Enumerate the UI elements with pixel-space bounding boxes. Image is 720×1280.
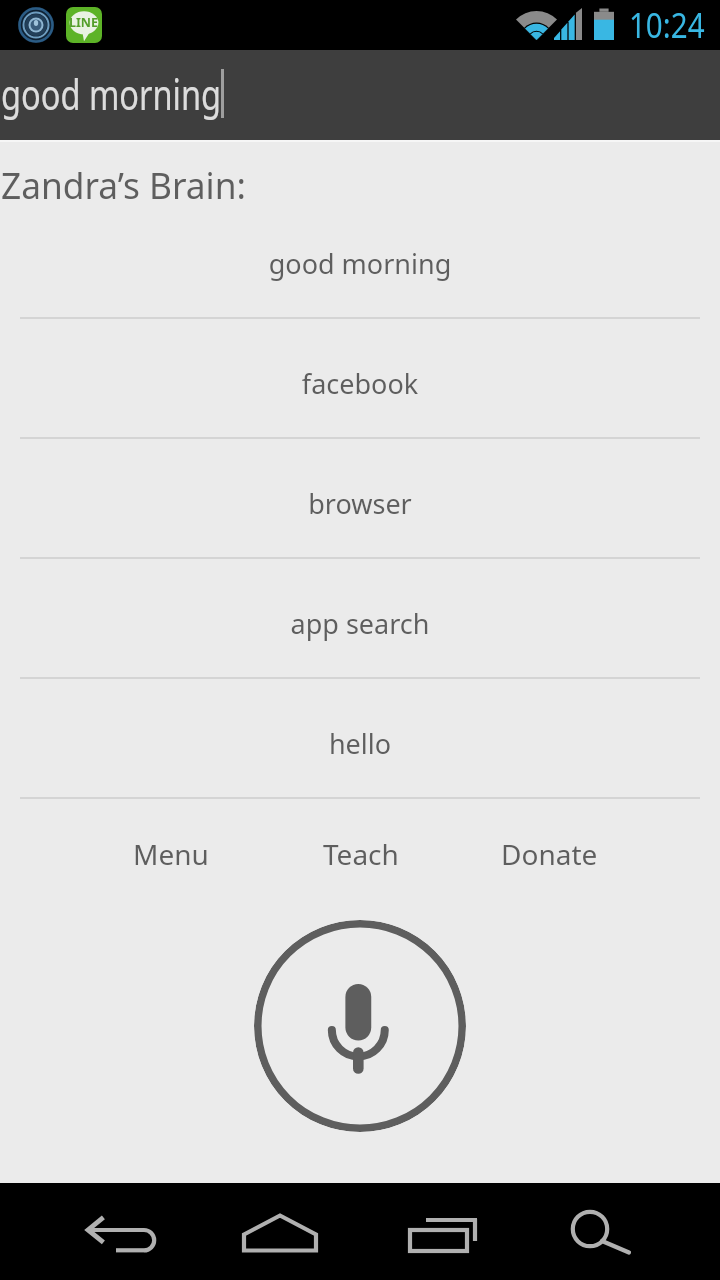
- button[interactable]: hello: [0, 679, 720, 799]
- button[interactable]: facebook: [0, 319, 720, 439]
- button[interactable]: Search: [520, 1183, 680, 1280]
- button[interactable]: good morning: [0, 199, 720, 319]
- staticText: 10:24: [629, 1, 705, 49]
- staticText: Teach: [323, 835, 399, 873]
- staticText: facebook: [0, 365, 720, 402]
- staticText: good morning: [0, 245, 720, 282]
- button[interactable]: Home: [200, 1183, 360, 1280]
- staticText: Donate: [501, 835, 598, 873]
- staticText: browser: [0, 485, 720, 522]
- button[interactable]: Donate: [455, 818, 644, 888]
- button[interactable]: Voice input: [254, 920, 466, 1132]
- button[interactable]: Back: [40, 1183, 200, 1280]
- staticText: hello: [0, 725, 720, 762]
- button[interactable]: app search: [0, 559, 720, 679]
- button[interactable]: Recent apps: [360, 1183, 520, 1280]
- staticText: good morning: [1, 65, 222, 122]
- staticText: app search: [0, 605, 720, 642]
- staticText: LINE: [69, 14, 99, 31]
- button[interactable]: good morning: [0, 50, 720, 140]
- button[interactable]: browser: [0, 439, 720, 559]
- button[interactable]: Teach: [266, 818, 455, 888]
- button[interactable]: Menu: [76, 818, 266, 888]
- staticText: Zandra’s Brain:: [1, 161, 246, 210]
- staticText: Menu: [133, 835, 209, 873]
